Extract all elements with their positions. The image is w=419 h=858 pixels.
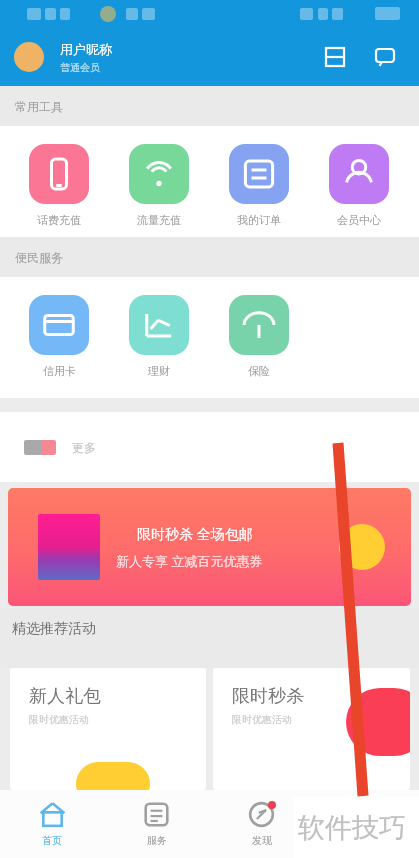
staticText: 新人礼包: [29, 685, 101, 708]
staticText: 保险: [248, 364, 270, 378]
staticText: 信用卡: [43, 364, 76, 378]
button[interactable]: 流量充值: [109, 126, 209, 227]
button[interactable]: 话费充值: [9, 126, 109, 227]
button[interactable]: Messages: [369, 41, 401, 73]
staticText: 限时优惠活动: [232, 713, 292, 726]
staticText: 普通会员: [60, 61, 100, 74]
button[interactable]: 我的: [314, 790, 419, 858]
staticText: 话费充值: [37, 213, 81, 227]
staticText: 我的订单: [237, 213, 281, 227]
staticText: 服务: [147, 834, 167, 847]
staticText: 限时秒杀 全场包邮: [137, 524, 253, 543]
staticText: 首页: [42, 834, 62, 847]
button[interactable]: 信用卡: [9, 277, 109, 378]
staticText: 常用工具: [15, 99, 63, 114]
staticText: 发现: [252, 834, 272, 847]
button[interactable]: 限时秒杀 全场包邮: [8, 488, 411, 606]
staticText: 限时优惠活动: [29, 713, 89, 726]
staticText: 软件技巧: [298, 811, 406, 845]
button[interactable]: 服务: [104, 790, 209, 858]
staticText: 便民服务: [15, 250, 63, 265]
staticText: 精选推荐活动: [12, 620, 96, 638]
button[interactable]: Scan QR code: [319, 41, 351, 73]
button[interactable]: 更多: [24, 412, 419, 482]
button[interactable]: 会员中心: [309, 126, 409, 227]
button[interactable]: 限时秒杀: [213, 668, 410, 790]
staticText: 流量充值: [137, 213, 181, 227]
staticText: 理财: [148, 364, 170, 378]
button[interactable]: 发现: [209, 790, 314, 858]
staticText: 限时秒杀: [232, 685, 304, 708]
staticText: 我的: [357, 834, 377, 847]
staticText: 会员中心: [337, 213, 381, 227]
staticText: 用户昵称: [60, 41, 112, 57]
button[interactable]: 新人礼包: [10, 668, 206, 790]
button[interactable]: 我的订单: [209, 126, 309, 227]
button[interactable]: Profile avatar: [14, 42, 44, 72]
button[interactable]: 首页: [0, 790, 104, 858]
staticText: 新人专享 立减百元优惠券: [116, 552, 263, 570]
staticText: 更多: [72, 440, 96, 455]
button[interactable]: 理财: [109, 277, 209, 378]
button[interactable]: 保险: [209, 277, 309, 378]
